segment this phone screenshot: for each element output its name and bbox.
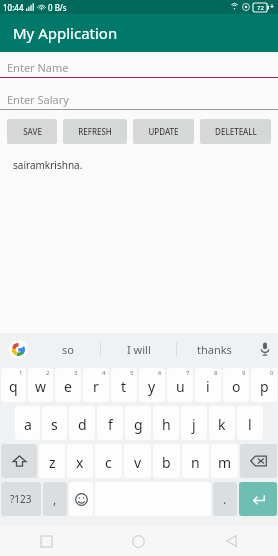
button[interactable]: i — [195, 368, 221, 402]
button[interactable]: q — [1, 368, 26, 402]
staticText: 7 — [186, 369, 190, 377]
staticText: 6 — [158, 369, 162, 377]
staticText: o — [232, 377, 241, 396]
staticText: . — [223, 491, 227, 507]
button[interactable]: Google — [0, 333, 36, 365]
button[interactable]: Enter Name — [0, 57, 278, 78]
button[interactable]: z — [39, 444, 65, 478]
button[interactable]: f — [97, 406, 123, 440]
button[interactable]: REFRESH — [63, 119, 127, 144]
button[interactable]: SAVE — [7, 119, 57, 144]
staticText: u — [176, 377, 185, 396]
button[interactable]: so — [36, 333, 100, 365]
button[interactable]: l — [237, 406, 263, 440]
button[interactable]: d — [69, 406, 95, 440]
staticText: sairamkrishna. — [13, 158, 83, 172]
button[interactable]: p — [251, 368, 277, 402]
staticText: UPDATE — [148, 126, 179, 137]
button[interactable]: s — [42, 406, 67, 440]
button[interactable]: Enter — [239, 482, 277, 516]
staticText: 1 — [19, 369, 23, 377]
button[interactable]: Enter Salary — [0, 89, 278, 110]
button[interactable]: . — [213, 482, 237, 516]
staticText: s — [51, 415, 58, 434]
staticText: t — [121, 377, 127, 396]
button[interactable]: I will — [101, 333, 176, 365]
button[interactable]: , — [43, 482, 67, 516]
button[interactable]: Home — [92, 526, 185, 556]
staticText: REFRESH — [78, 126, 112, 137]
staticText: j — [192, 415, 196, 434]
staticText: i — [206, 377, 210, 396]
button[interactable]: u — [167, 368, 193, 402]
button[interactable]: k — [209, 406, 235, 440]
button[interactable]: y — [139, 368, 165, 402]
staticText: DELETEALL — [215, 126, 257, 137]
button[interactable]: c — [95, 444, 122, 478]
staticText: l — [248, 415, 252, 434]
button[interactable]: ?123 — [1, 482, 41, 516]
staticText: 8 — [214, 369, 218, 377]
button[interactable]: e — [55, 368, 81, 402]
button[interactable]: j — [181, 406, 207, 440]
staticText: ?123 — [10, 492, 32, 506]
staticText: f — [108, 415, 113, 434]
staticText: h — [162, 415, 171, 434]
staticText: b — [162, 453, 171, 472]
staticText: 0 B/s — [48, 2, 67, 13]
staticText: k — [218, 415, 226, 434]
staticText: g — [134, 415, 143, 434]
button[interactable]: Shift — [1, 444, 37, 478]
staticText: My Application — [13, 23, 118, 43]
staticText: I will — [127, 342, 151, 357]
staticText: q — [9, 377, 18, 396]
staticText: so — [62, 342, 74, 357]
staticText: Enter Name — [7, 60, 69, 75]
staticText: x — [76, 453, 84, 472]
staticText: 3 — [74, 369, 78, 377]
button[interactable]: thanks — [177, 333, 252, 365]
staticText: 10:44 — [3, 2, 24, 13]
button[interactable]: DELETEALL — [200, 119, 271, 144]
staticText: w — [35, 377, 47, 396]
button[interactable]: h — [153, 406, 179, 440]
staticText: v — [134, 453, 142, 472]
staticText: + — [270, 2, 275, 12]
button[interactable]: r — [83, 368, 109, 402]
button[interactable]: b — [153, 444, 180, 478]
staticText: y — [148, 377, 156, 396]
button[interactable]: UPDATE — [133, 119, 194, 144]
staticText: 5 — [130, 369, 134, 377]
button[interactable]: Recent apps — [0, 526, 92, 556]
staticText: SAVE — [23, 126, 42, 137]
staticText: 0 — [270, 369, 274, 377]
button[interactable]: t — [111, 368, 137, 402]
button[interactable]: w — [28, 368, 53, 402]
button[interactable]: Back — [185, 526, 278, 556]
button[interactable]: g — [125, 406, 151, 440]
button[interactable]: v — [124, 444, 151, 478]
button[interactable]: a — [15, 406, 40, 440]
staticText: r — [93, 377, 99, 396]
staticText: p — [260, 377, 269, 396]
staticText: 72 — [257, 4, 264, 12]
staticText: 4 — [102, 369, 106, 377]
staticText: , — [53, 491, 57, 507]
staticText: c — [105, 453, 112, 472]
staticText: d — [78, 415, 87, 434]
button[interactable]: Emoji — [69, 482, 93, 516]
button[interactable]: n — [182, 444, 209, 478]
button[interactable]: m — [211, 444, 238, 478]
button[interactable]: x — [67, 444, 93, 478]
staticText: a — [24, 415, 32, 434]
button[interactable]: o — [223, 368, 249, 402]
staticText: e — [64, 377, 72, 396]
staticText: 9 — [242, 369, 246, 377]
button[interactable]: Voice input — [252, 333, 278, 365]
staticText: m — [218, 453, 232, 472]
staticText: z — [49, 453, 56, 472]
button[interactable]: Backspace — [240, 444, 277, 478]
staticText: n — [191, 453, 200, 472]
staticText: Enter Salary — [7, 92, 69, 107]
